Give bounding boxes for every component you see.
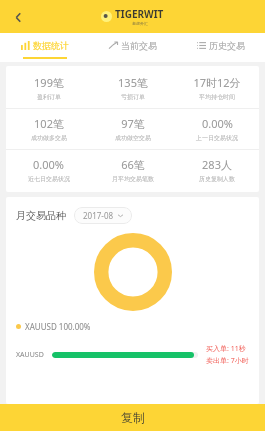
staticText: 66笔	[121, 157, 145, 172]
staticText: 199笔	[34, 75, 64, 90]
button[interactable]: 数据统计	[0, 33, 89, 62]
staticText: 近七日交易状况	[28, 175, 70, 183]
staticText: 135笔	[118, 75, 148, 90]
staticText: 平均持仓时间	[199, 93, 235, 101]
staticText: 盈利订单	[37, 93, 61, 101]
staticText: 老虎外汇	[132, 21, 148, 26]
staticText: 成功做空交易	[115, 134, 151, 142]
staticText: 283人	[202, 157, 232, 172]
staticText: 2017-08	[83, 210, 114, 221]
staticText: 月交易品种	[16, 209, 66, 222]
staticText: 历史交易	[209, 40, 245, 51]
staticText: 102笔	[34, 116, 64, 131]
staticText: 卖出单: 7小时	[206, 356, 249, 366]
staticText: 当前交易	[121, 40, 157, 51]
staticText: 97笔	[121, 116, 145, 131]
staticText: 数据统计	[33, 40, 69, 51]
staticText: 0.00%	[33, 157, 64, 172]
staticText: 0.00%	[202, 116, 233, 131]
staticText: 买入单: 11秒	[206, 344, 246, 354]
staticText: 历史复制人数	[199, 175, 235, 183]
staticText: 复制	[121, 410, 145, 425]
button[interactable]: 复制	[0, 404, 265, 431]
staticText: 亏损订单	[121, 93, 145, 101]
staticText: 月平均交易笔数	[112, 175, 154, 183]
staticText: XAUUSD 100.00%	[25, 321, 91, 332]
button[interactable]: 2017-08	[74, 207, 132, 224]
staticText: 成功做多交易	[31, 134, 67, 142]
button[interactable]: Back	[5, 4, 31, 30]
staticText: XAUUSD	[16, 350, 44, 360]
staticText: TIGERWIT	[115, 7, 164, 21]
button[interactable]: 当前交易	[89, 33, 177, 62]
staticText: 17时12分	[193, 75, 241, 90]
staticText: 上一日交易状况	[196, 134, 238, 142]
button[interactable]: 历史交易	[177, 33, 265, 62]
